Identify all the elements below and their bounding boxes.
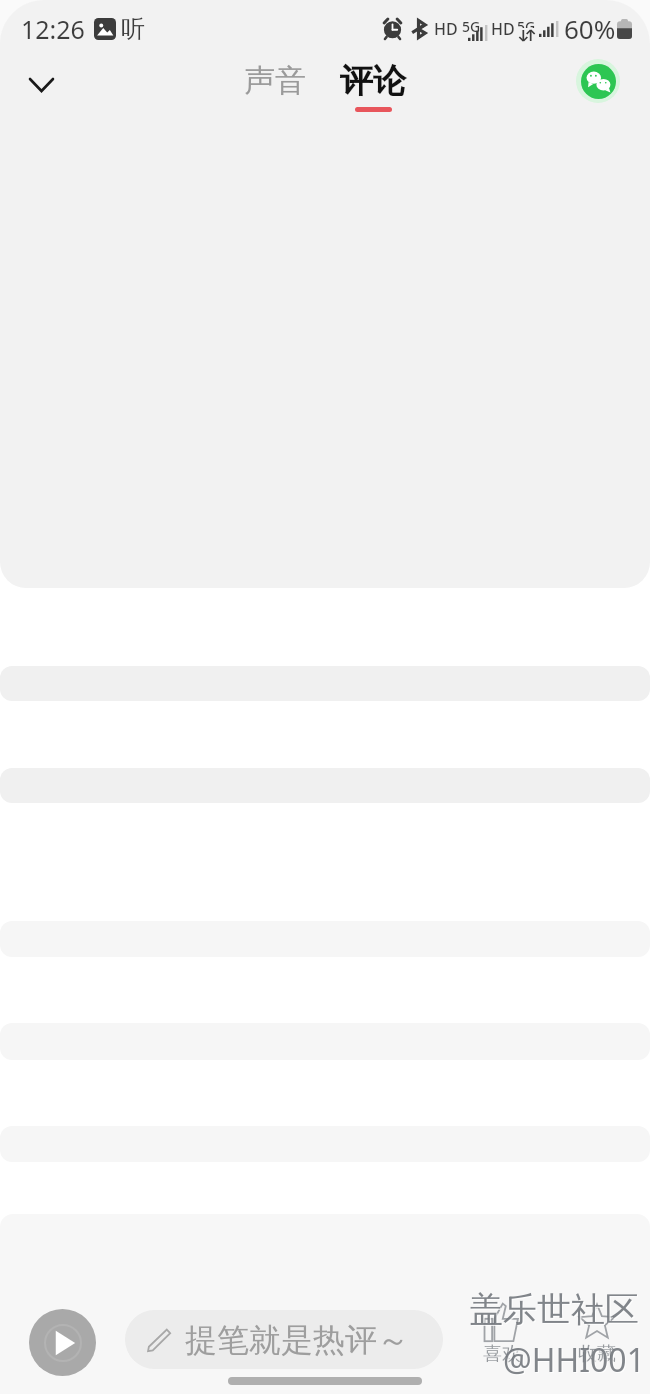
button[interactable]: 声音 [244, 61, 306, 100]
staticText: 5G [517, 17, 536, 28]
button[interactable]: Share to WeChat [576, 59, 620, 103]
button[interactable]: Play [29, 1309, 96, 1376]
staticText: 听 [121, 14, 145, 44]
staticText: 收藏 [578, 1342, 616, 1366]
button[interactable]: Collapse [17, 61, 65, 109]
staticText: 提笔就是热评～ [185, 1320, 409, 1360]
staticText: HD [491, 18, 515, 40]
staticText: @HHI001 [504, 1339, 646, 1383]
staticText: 喜欢 [483, 1342, 521, 1366]
button[interactable]: 评论 [340, 60, 406, 112]
staticText: @HHI001 [503, 1338, 645, 1382]
staticText: 5G [462, 17, 481, 36]
staticText: 12:26 [21, 12, 85, 46]
staticText: 60% [564, 11, 616, 46]
staticText: 盖乐世社区 [469, 1288, 639, 1331]
button[interactable]: 提笔就是热评～ [125, 1310, 443, 1369]
staticText: HD [434, 18, 458, 40]
staticText: 盖乐世社区 [470, 1289, 640, 1332]
staticText: 声音 [244, 61, 306, 100]
staticText: 评论 [340, 60, 406, 102]
